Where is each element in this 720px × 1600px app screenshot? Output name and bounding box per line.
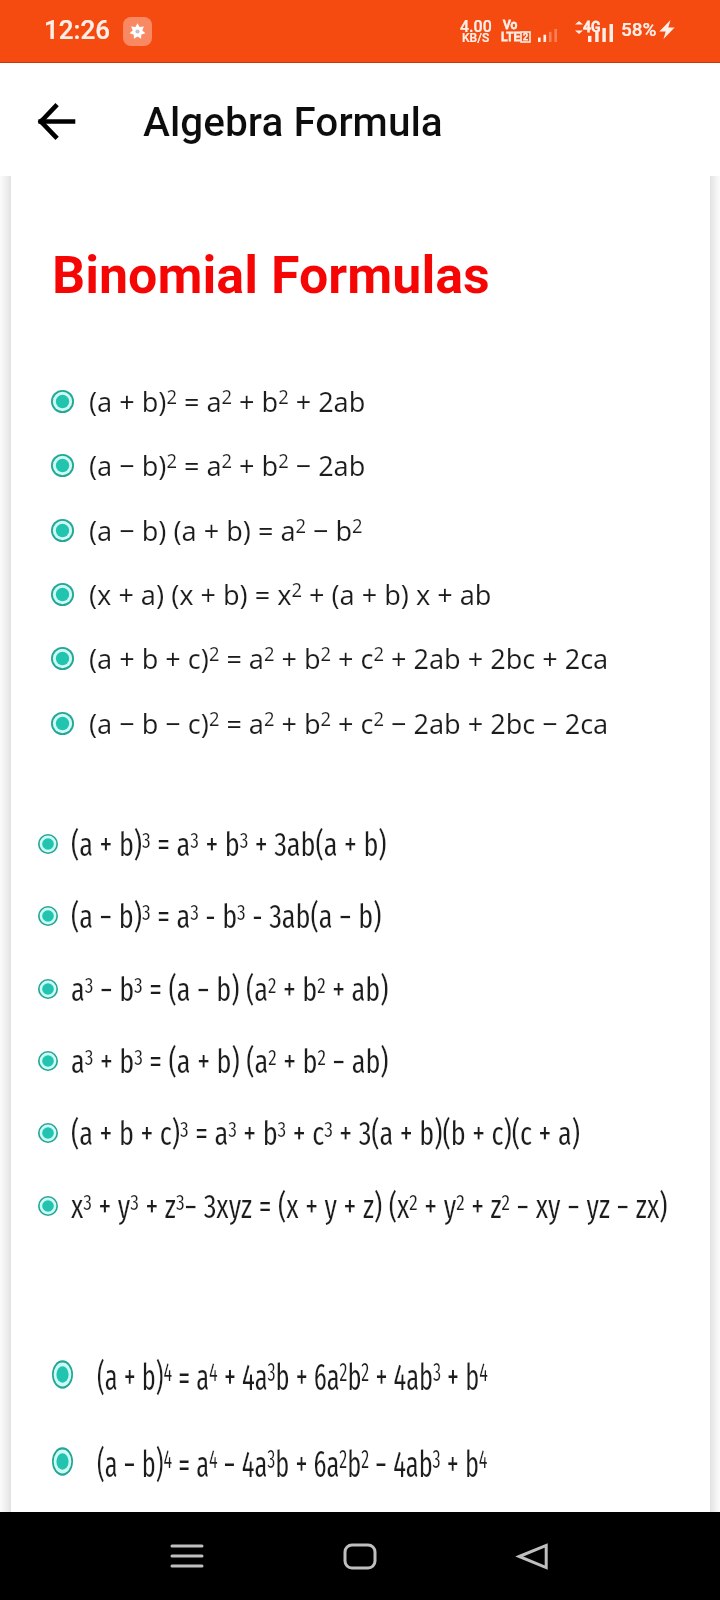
staticText: a3 + b3 = (a + b) (a2 + b2 − ab) [71,1042,389,1082]
button[interactable]: Back [499,1522,567,1590]
button[interactable]: (x + a) (x + b) = x2 + (a + b) x + ab [11,547,710,643]
button[interactable]: (a − b)3 = a3 - b3 - 3ab(a − b) [11,873,710,969]
staticText: KB/S [462,31,490,45]
staticText: (a − b)3 = a3 - b3 - 3ab(a − b) [71,897,382,937]
button[interactable]: (a + b + c)2 = a2 + b2 + c2 + 2ab + 2bc … [11,611,710,707]
button[interactable]: Recent apps [153,1522,221,1590]
staticText: (a − b) (a + b) = a2 − b2 [89,511,363,550]
staticText: 4G [583,19,601,35]
staticText: (x + a) (x + b) = x2 + (a + b) x + ab [89,575,492,614]
staticText: (a + b + c)3 = a3 + b3 + c3 + 3(a + b)(b… [71,1114,580,1154]
button[interactable]: Home [326,1522,394,1590]
staticText: 58% [621,18,657,40]
button[interactable]: a3 + b3 = (a + b) (a2 + b2 − ab) [11,1018,710,1114]
button[interactable]: Back [20,85,92,157]
staticText: 4.00 [460,17,492,36]
staticText: (a + b)4 = a4 + 4a3b + 6a2b2 + 4ab3 + b4 [97,1356,488,1400]
staticText: 12:26 [44,15,111,45]
button[interactable]: (a − b − c)2 = a2 + b2 + c2 − 2ab + 2bc … [11,676,710,772]
staticText: 2 [523,32,529,43]
button[interactable]: (a − b)2 = a2 + b2 − 2ab [11,418,710,514]
button[interactable]: (a + b)2 = a2 + b2 + 2ab [11,354,710,450]
staticText: Algebra Formula [143,98,443,145]
button[interactable]: (a + b)3 = a3 + b3 + 3ab(a + b) [11,801,710,897]
staticText: Binomial Formulas [52,245,490,306]
staticText: x3 + y3 + z3− 3xyz = (x + y + z) (x2 + y… [71,1187,668,1227]
button[interactable]: a3 − b3 = (a − b) (a2 + b2 + ab) [11,946,710,1042]
staticText: (a + b)3 = a3 + b3 + 3ab(a + b) [71,825,387,865]
staticText: (a + b)2 = a2 + b2 + 2ab [89,382,366,421]
staticText: LTE [501,30,521,44]
staticText: (a − b)4 = a4 − 4a3b + 6a2b2 − 4ab3 + b4 [97,1443,488,1487]
button[interactable]: (a + b + c)3 = a3 + b3 + c3 + 3(a + b)(b… [11,1090,710,1186]
button[interactable]: (a + b)4 = a4 + 4a3b + 6a2b2 + 4ab3 + b4 [11,1335,710,1431]
button[interactable]: x3 + y3 + z3− 3xyz = (x + y + z) (x2 + y… [11,1163,710,1259]
button[interactable]: (a − b)4 = a4 − 4a3b + 6a2b2 − 4ab3 + b4 [11,1422,710,1518]
staticText: (a − b − c)2 = a2 + b2 + c2 − 2ab + 2bc … [89,704,609,743]
staticText: a3 − b3 = (a − b) (a2 + b2 + ab) [71,970,389,1010]
staticText: (a − b)2 = a2 + b2 − 2ab [89,446,366,485]
staticText: Vo [503,18,518,32]
staticText: (a + b + c)2 = a2 + b2 + c2 + 2ab + 2bc … [89,639,609,678]
button[interactable]: (a − b) (a + b) = a2 − b2 [11,483,710,579]
